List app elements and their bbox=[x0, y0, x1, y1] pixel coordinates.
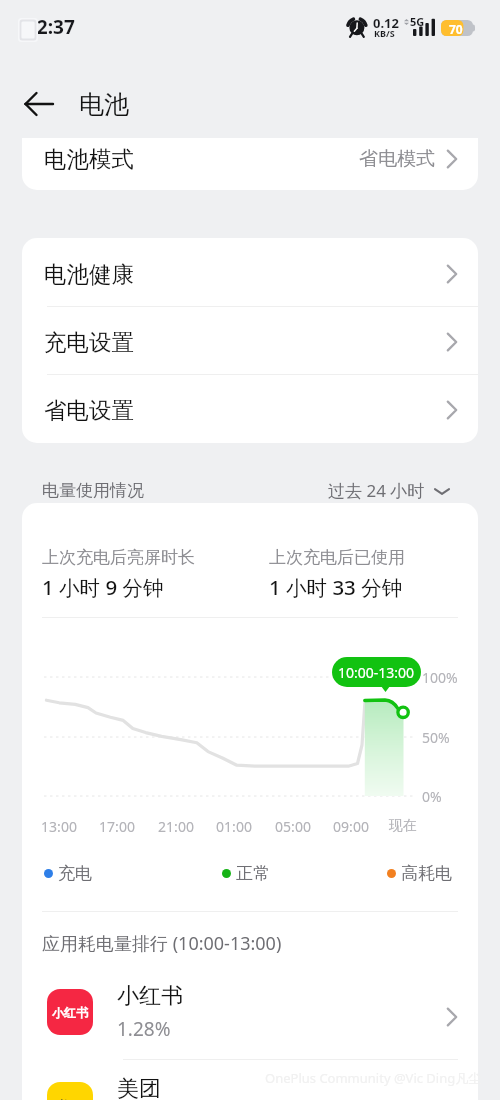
staticText: 电池健康 bbox=[44, 260, 134, 288]
staticText: 1 小时 9 分钟 bbox=[42, 573, 164, 601]
staticText: 上次充电后亮屏时长 bbox=[42, 547, 195, 568]
staticText: 充电 bbox=[58, 863, 92, 883]
staticText: 01:00 bbox=[209, 817, 259, 836]
staticText: 正常 bbox=[236, 863, 270, 883]
staticText: 100% bbox=[422, 668, 458, 687]
staticText: 电池模式 bbox=[44, 145, 134, 173]
button[interactable]: 充电设置 bbox=[22, 306, 478, 374]
staticText: 09:00 bbox=[326, 817, 376, 836]
staticText: KB/S bbox=[374, 27, 395, 39]
staticText: 50% bbox=[422, 728, 450, 747]
staticText: 上次充电后已使用 bbox=[269, 547, 405, 568]
staticText: 0.12 bbox=[373, 14, 399, 32]
staticText: 5G bbox=[410, 14, 425, 29]
button[interactable]: 小红书 bbox=[22, 969, 478, 1065]
button[interactable]: 过去 24 小时 bbox=[328, 479, 478, 502]
staticText: 05:00 bbox=[268, 817, 318, 836]
staticText: 10:00-13:00 bbox=[338, 663, 415, 682]
button[interactable]: 电池模式 bbox=[22, 138, 478, 190]
button[interactable]: 电池健康 bbox=[22, 238, 478, 306]
staticText: 1 小时 33 分钟 bbox=[269, 573, 403, 601]
staticText: 小红书 bbox=[52, 1005, 88, 1020]
staticText: 70 bbox=[449, 21, 463, 37]
staticText: 电量使用情况 bbox=[42, 480, 144, 501]
button[interactable]: 美团 bbox=[22, 1062, 478, 1100]
staticText: 现在 bbox=[378, 817, 428, 835]
staticText: 1.28% bbox=[117, 1016, 171, 1042]
staticText: 17:00 bbox=[92, 817, 142, 836]
staticText: 美团 bbox=[117, 1075, 161, 1100]
staticText: 21:00 bbox=[151, 817, 201, 836]
staticText: 充电设置 bbox=[44, 328, 134, 356]
staticText: 0% bbox=[422, 787, 442, 806]
staticText: 13:00 bbox=[34, 817, 84, 836]
staticText: 电池 bbox=[79, 89, 129, 120]
staticText: 过去 24 小时 bbox=[328, 479, 425, 502]
staticText: 12:37 bbox=[26, 14, 75, 40]
button[interactable]: 省电设置 bbox=[22, 374, 478, 442]
staticText: 高耗电 bbox=[401, 863, 452, 883]
staticText: OnePlus Community @Vic Ding凡尘 bbox=[265, 1069, 482, 1087]
staticText: 省电设置 bbox=[44, 396, 134, 424]
button[interactable]: Back bbox=[17, 82, 61, 126]
staticText: 小红书 bbox=[117, 982, 183, 1010]
staticText: 省电模式 bbox=[359, 147, 435, 171]
staticText: 美团 bbox=[58, 1098, 82, 1100]
staticText: 应用耗电量排行 (10:00-13:00) bbox=[42, 931, 282, 956]
